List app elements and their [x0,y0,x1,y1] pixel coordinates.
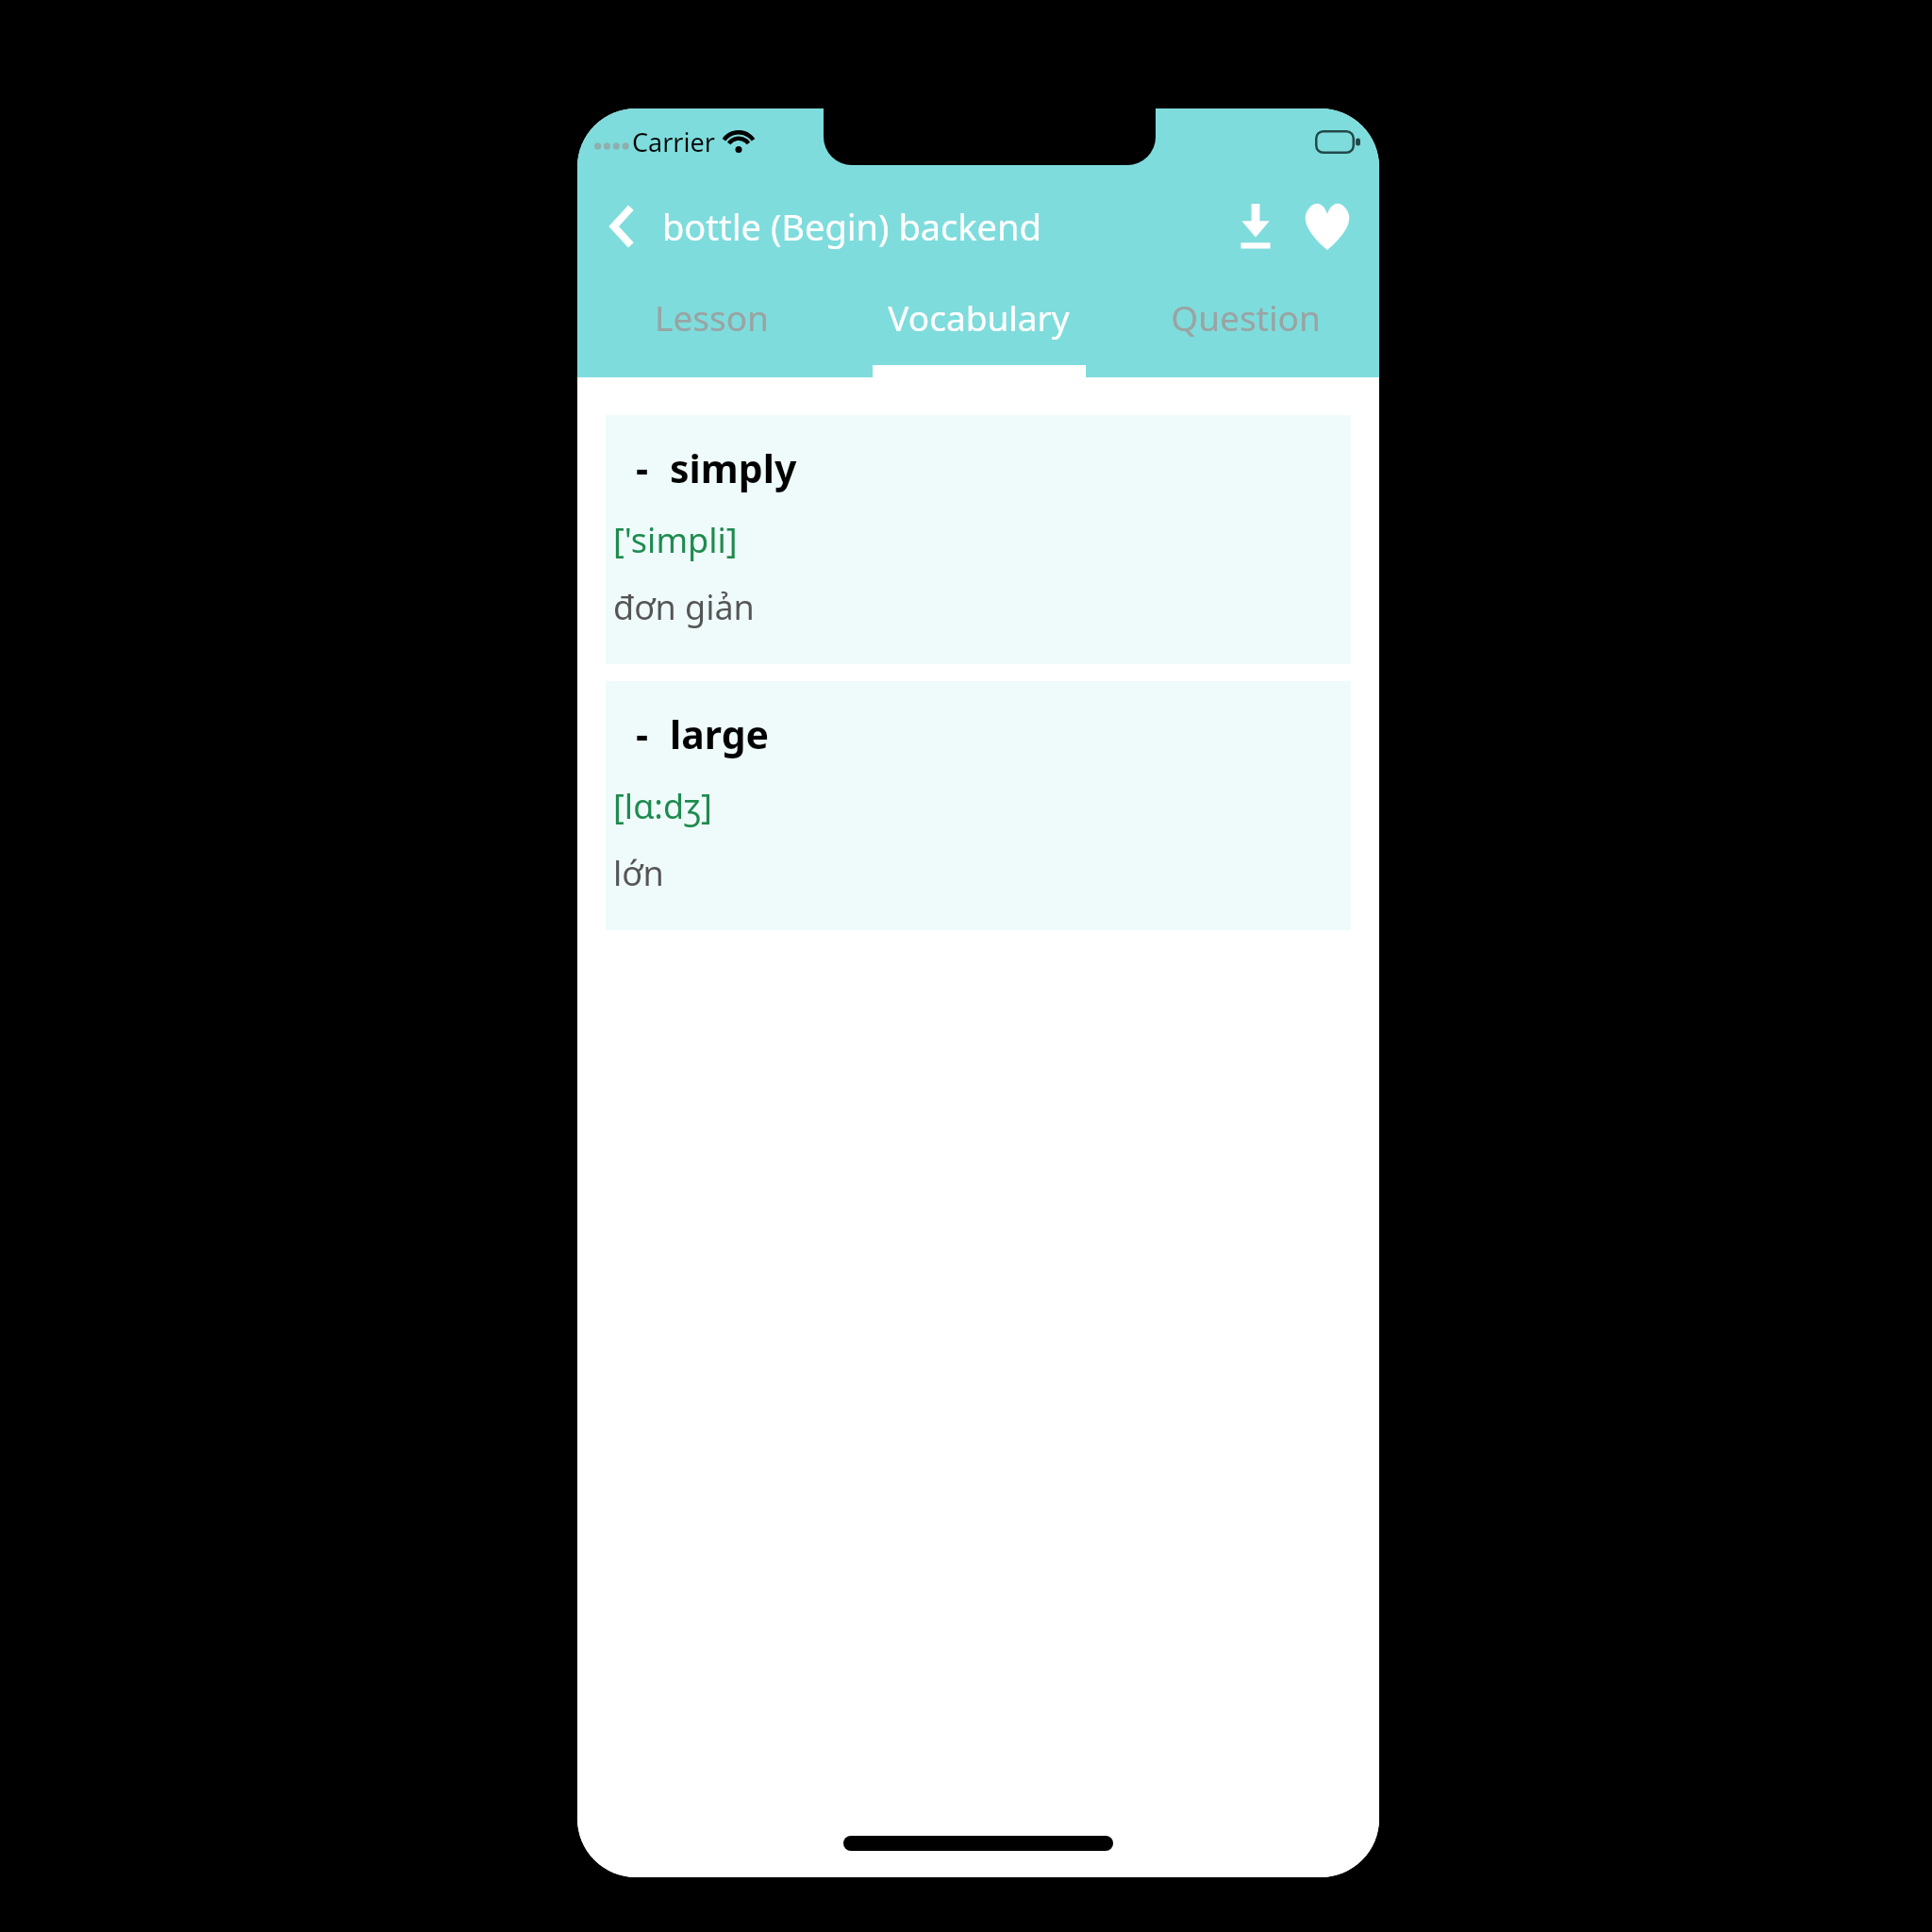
staticText: [lɑ:dʒ] [613,783,712,829]
button[interactable]: Back [596,200,649,253]
staticText: bottle (Begin) backend [662,202,1041,251]
staticText: Carrier [632,125,715,159]
staticText: Question [1171,293,1321,341]
button[interactable]: Question [1112,278,1379,377]
button[interactable]: - [606,415,1351,664]
staticText: lớn [613,850,664,896]
button[interactable]: Favorite [1296,195,1358,258]
button[interactable]: Download [1226,197,1285,256]
staticText: đơn giản [613,584,755,630]
staticText: - [636,441,649,494]
staticText: ['simpli] [613,517,738,563]
button[interactable]: Vocabulary [845,278,1112,377]
staticText: - [636,708,649,760]
button[interactable]: Lesson [577,278,845,377]
staticText: large [670,708,770,760]
button[interactable]: - [606,681,1351,930]
staticText: Lesson [655,293,769,341]
staticText: Vocabulary [888,293,1070,341]
staticText: simply [670,441,797,494]
